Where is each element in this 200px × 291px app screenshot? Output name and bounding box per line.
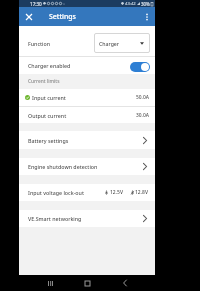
button[interactable]: VE.Smart networking [19,210,155,227]
staticText: Engine shutdown detection [28,163,98,170]
staticText: Function [28,40,51,47]
button[interactable]: Function [19,26,155,56]
staticText: VE.Smart networking [28,215,82,222]
staticText: 43:42 [125,1,136,7]
staticText: Current limits [28,78,60,85]
button[interactable]: Output current [19,107,155,123]
button[interactable]: Charger enabled [19,57,155,74]
staticText: 12.5V [110,189,124,196]
button[interactable]: Recents [43,276,57,290]
button[interactable]: Charger [94,33,150,53]
button[interactable]: More options [139,7,155,26]
staticText: Settings [49,12,76,21]
staticText: 30% [141,1,150,7]
button[interactable]: Charger enabled [130,62,150,72]
button[interactable]: Engine shutdown detection [19,158,155,175]
button[interactable]: Battery settings [19,131,155,149]
staticText: Input current [32,94,66,101]
staticText: 50.0A [136,94,149,101]
button[interactable]: Input voltage lock-out [19,184,155,201]
staticText: Charger [99,40,120,47]
staticText: Input voltage lock-out [28,189,84,196]
staticText: 12.8V [135,189,149,196]
button[interactable]: Home [80,276,94,290]
staticText: Output current [28,112,67,119]
staticText: 30.0A [136,112,149,119]
button[interactable]: Input current [19,89,155,106]
staticText: Charger enabled [28,62,71,69]
button[interactable]: Back [118,276,132,290]
staticText: 17:30 [30,1,42,7]
button[interactable]: Close [19,7,38,26]
staticText: Battery settings [28,137,69,144]
